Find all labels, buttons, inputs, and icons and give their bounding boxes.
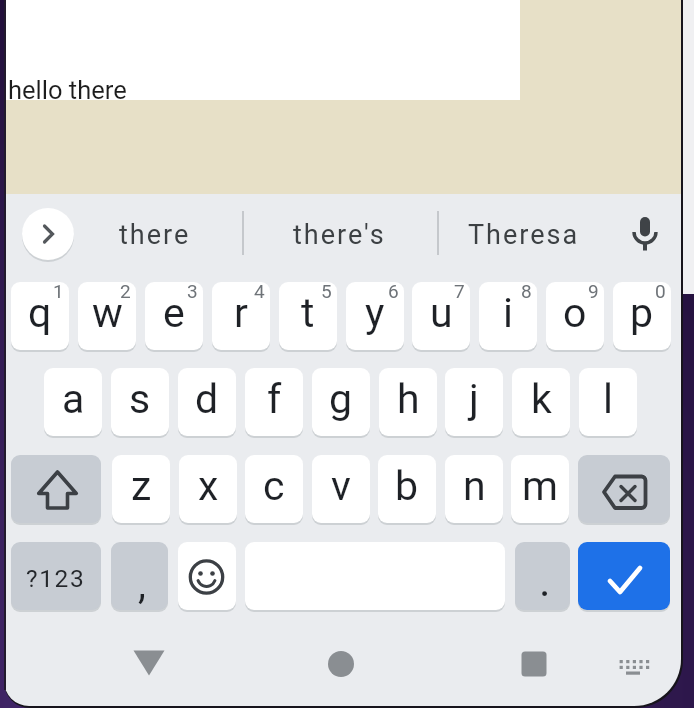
button[interactable]: c: [245, 455, 303, 523]
button[interactable]: [321, 644, 361, 684]
button[interactable]: hello there: [4, 0, 520, 100]
staticText: j: [469, 375, 479, 423]
staticText: 4: [254, 282, 265, 302]
button[interactable]: n: [445, 455, 503, 523]
staticText: h: [397, 375, 420, 423]
button[interactable]: g: [312, 368, 370, 436]
button[interactable]: [578, 455, 670, 523]
button[interactable]: m: [511, 455, 569, 523]
staticText: 9: [588, 282, 599, 302]
staticText: 7: [454, 282, 465, 302]
staticText: y: [365, 289, 385, 337]
button[interactable]: z: [112, 455, 170, 523]
button[interactable]: ?123: [11, 542, 101, 610]
staticText: z: [131, 462, 152, 510]
button[interactable]: there's: [269, 206, 409, 262]
staticText: 1: [53, 282, 64, 302]
staticText: hello there: [8, 75, 127, 105]
staticText: there's: [293, 219, 386, 251]
staticText: p: [630, 289, 654, 337]
staticText: q: [28, 289, 52, 337]
button[interactable]: [129, 644, 169, 684]
button[interactable]: [178, 542, 236, 610]
button[interactable]: [578, 542, 670, 610]
button[interactable]: u: [412, 282, 470, 350]
button[interactable]: [615, 658, 651, 684]
staticText: u: [430, 289, 453, 337]
staticText: g: [329, 375, 353, 423]
button[interactable]: f: [245, 368, 303, 436]
button[interactable]: y: [346, 282, 404, 350]
button[interactable]: [514, 644, 554, 684]
button[interactable]: ,: [111, 542, 168, 610]
staticText: Theresa: [468, 219, 580, 251]
staticText: ,: [138, 561, 146, 608]
button[interactable]: i: [479, 282, 537, 350]
staticText: b: [395, 462, 419, 510]
button[interactable]: there: [85, 206, 225, 262]
staticText: x: [198, 462, 219, 510]
staticText: e: [163, 289, 185, 337]
button[interactable]: e: [145, 282, 203, 350]
staticText: 0: [655, 282, 666, 302]
button[interactable]: x: [179, 455, 237, 523]
button[interactable]: p: [613, 282, 671, 350]
staticText: r: [234, 289, 248, 337]
button[interactable]: v: [312, 455, 370, 523]
staticText: v: [331, 462, 351, 510]
button[interactable]: .: [515, 542, 570, 610]
staticText: c: [263, 462, 285, 510]
staticText: d: [195, 375, 219, 423]
button[interactable]: t: [279, 282, 337, 350]
staticText: k: [531, 375, 552, 423]
button[interactable]: l: [579, 368, 637, 436]
staticText: n: [463, 462, 486, 510]
button[interactable]: d: [178, 368, 236, 436]
button[interactable]: k: [512, 368, 570, 436]
button[interactable]: q: [11, 282, 69, 350]
button[interactable]: j: [445, 368, 503, 436]
staticText: .: [539, 555, 551, 607]
staticText: ?123: [26, 564, 86, 593]
staticText: 6: [388, 282, 399, 302]
staticText: i: [503, 289, 513, 337]
button[interactable]: s: [111, 368, 169, 436]
button[interactable]: [22, 208, 74, 260]
button[interactable]: h: [379, 368, 437, 436]
staticText: 2: [120, 282, 131, 302]
staticText: w: [92, 289, 123, 337]
staticText: 5: [321, 282, 332, 302]
staticText: 3: [187, 282, 198, 302]
staticText: m: [522, 462, 558, 510]
button[interactable]: a: [44, 368, 102, 436]
staticText: t: [301, 289, 315, 337]
staticText: there: [119, 219, 191, 251]
button[interactable]: [11, 455, 101, 523]
button[interactable]: Theresa: [454, 206, 594, 262]
button[interactable]: [628, 208, 664, 260]
button[interactable]: b: [378, 455, 436, 523]
staticText: l: [603, 375, 613, 423]
button[interactable]: w: [78, 282, 136, 350]
staticText: s: [129, 375, 151, 423]
button[interactable]: o: [546, 282, 604, 350]
staticText: 8: [521, 282, 532, 302]
button[interactable]: r: [212, 282, 270, 350]
staticText: o: [563, 289, 587, 337]
staticText: a: [62, 375, 85, 423]
staticText: f: [267, 375, 282, 423]
